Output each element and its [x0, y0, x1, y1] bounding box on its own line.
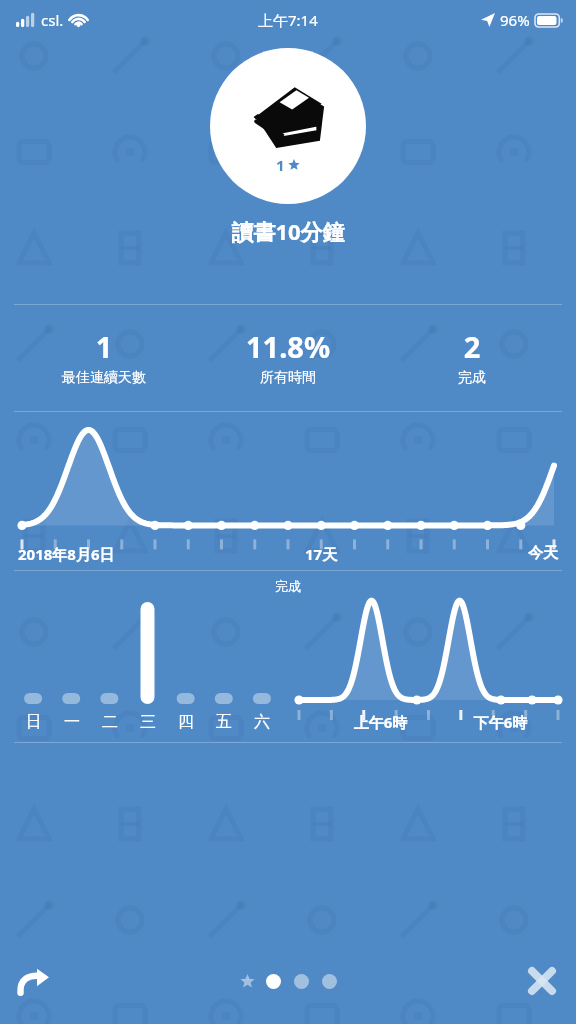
staticText: 2018年8月6日 [18, 544, 115, 564]
button[interactable]: 2 [380, 327, 564, 387]
staticText: 1 [276, 155, 285, 175]
button[interactable] [266, 974, 281, 989]
staticText: 上午7:14 [258, 10, 318, 30]
staticText: 四 [167, 712, 205, 732]
staticText: 完成 [380, 369, 564, 387]
staticText: 上午6時 [322, 712, 439, 732]
staticText: 2 [380, 327, 564, 366]
staticText: 讀書10分鐘 [0, 216, 576, 246]
staticText: 完成 [0, 578, 576, 594]
staticText: 下午6時 [439, 712, 562, 732]
staticText: 所有時間 [196, 369, 380, 387]
staticText: csl. [41, 10, 64, 30]
button[interactable] [322, 974, 337, 989]
staticText: 五 [205, 712, 243, 732]
button[interactable] [294, 974, 309, 989]
button[interactable]: 1 [210, 48, 366, 204]
staticText: 96% [500, 10, 530, 30]
staticText: 今天 [528, 544, 558, 563]
staticText: 最佳連續天數 [12, 369, 196, 387]
button[interactable]: 11.8% [196, 327, 380, 387]
button[interactable]: 1 [12, 327, 196, 387]
staticText: 1 [12, 327, 196, 366]
staticText: 17天 [305, 544, 338, 564]
staticText: 二 [91, 712, 129, 732]
button[interactable]: Close [518, 957, 566, 1005]
staticText: 三 [129, 712, 167, 732]
staticText: 日 [14, 712, 53, 732]
staticText: 11.8% [196, 327, 380, 366]
staticText: 六 [243, 712, 281, 732]
button[interactable]: Share [10, 957, 58, 1005]
staticText: 一 [53, 712, 91, 732]
